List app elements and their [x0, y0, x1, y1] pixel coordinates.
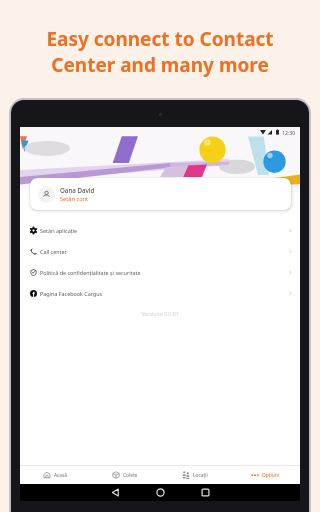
staticText: Politică de confidențialitate și securit…	[40, 269, 141, 276]
staticText: Pagina Facebook Cargus	[40, 290, 103, 297]
button[interactable]: Oana David	[30, 178, 291, 210]
staticText: Locații	[193, 472, 208, 479]
button[interactable]: Locații	[160, 466, 230, 484]
button[interactable]: Pagina Facebook Cargus	[20, 283, 300, 304]
staticText: Setări cont	[60, 195, 89, 203]
staticText: 12:30	[282, 129, 296, 136]
button[interactable]: Recent apps	[197, 484, 214, 501]
staticText: Versiune 0.0.81	[20, 310, 300, 317]
button[interactable]: Setări aplicație	[20, 220, 300, 241]
button[interactable]: Acasă	[20, 466, 90, 484]
button[interactable]: Home	[152, 484, 169, 501]
staticText: Acasă	[54, 472, 68, 479]
staticText: Easy connect to Contact Center and many …	[0, 26, 320, 77]
staticText: Setări aplicație	[40, 227, 78, 234]
button[interactable]: Back	[107, 484, 124, 501]
staticText: Oana David	[60, 186, 95, 194]
staticText: Colete	[123, 472, 138, 479]
staticText: Opțiuni	[262, 472, 279, 479]
button[interactable]: Colete	[90, 466, 160, 484]
button[interactable]: Politică de confidențialitate și securit…	[20, 262, 300, 283]
button[interactable]: Opțiuni	[230, 466, 300, 484]
button[interactable]: Call center	[20, 241, 300, 262]
staticText: Call center	[40, 248, 67, 255]
